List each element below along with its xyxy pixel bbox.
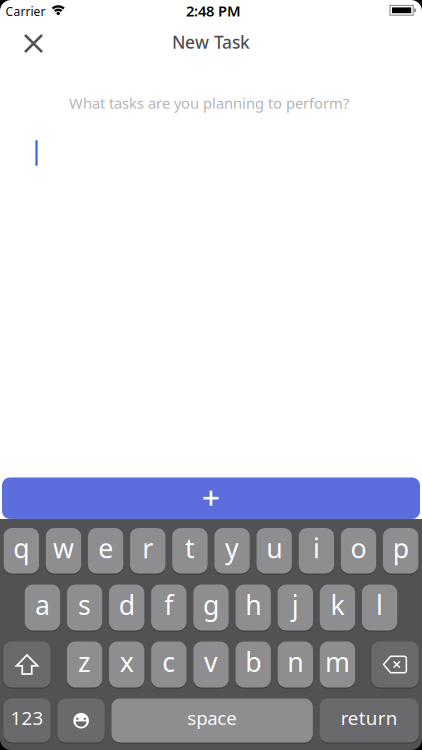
staticText: return xyxy=(341,705,398,730)
button[interactable]: Close xyxy=(19,29,47,57)
staticText: i xyxy=(313,530,320,566)
staticText: x xyxy=(120,644,134,679)
button[interactable]: t xyxy=(172,528,208,573)
button[interactable]: m xyxy=(320,641,355,687)
staticText: o xyxy=(350,530,366,566)
staticText: 2:48 PM xyxy=(186,1,241,21)
button[interactable]: 123 xyxy=(3,698,51,742)
staticText: r xyxy=(142,530,153,566)
staticText: b xyxy=(245,644,261,679)
button[interactable]: n xyxy=(278,641,313,687)
staticText: t xyxy=(185,530,195,566)
staticText: y xyxy=(225,530,239,566)
button[interactable]: j xyxy=(278,584,313,630)
staticText: u xyxy=(266,530,282,566)
staticText: z xyxy=(78,644,91,679)
staticText: New Task xyxy=(172,30,250,53)
staticText: space xyxy=(187,705,237,730)
staticText: v xyxy=(204,644,218,679)
staticText: h xyxy=(245,587,261,622)
button[interactable]: Emoji xyxy=(57,698,105,742)
button[interactable]: x xyxy=(109,641,144,687)
staticText: w xyxy=(53,530,74,566)
staticText: q xyxy=(13,530,29,566)
button[interactable]: Shift xyxy=(3,641,51,687)
staticText: g xyxy=(203,587,219,622)
button[interactable]: h xyxy=(235,584,271,630)
staticText: j xyxy=(292,587,299,622)
button[interactable]: Delete xyxy=(371,641,419,687)
button[interactable]: i xyxy=(299,528,334,573)
button[interactable]: w xyxy=(46,528,81,573)
button[interactable]: return xyxy=(320,698,419,742)
button[interactable]: o xyxy=(341,528,376,573)
staticText: What tasks are you planning to perform? xyxy=(69,93,349,113)
button[interactable]: v xyxy=(193,641,229,687)
button[interactable]: r xyxy=(130,528,165,573)
staticText: l xyxy=(376,587,383,622)
staticText: s xyxy=(78,587,91,622)
button[interactable]: q xyxy=(4,528,39,573)
button[interactable]: c xyxy=(151,641,186,687)
button[interactable]: p xyxy=(383,528,418,573)
button[interactable]: f xyxy=(151,584,187,630)
button[interactable]: d xyxy=(109,584,144,630)
button[interactable]: b xyxy=(235,641,271,687)
button[interactable]: z xyxy=(67,641,102,687)
button[interactable]: space xyxy=(111,698,313,742)
button[interactable]: y xyxy=(214,528,250,573)
button[interactable]: k xyxy=(320,584,355,630)
button[interactable]: e xyxy=(88,528,123,573)
button[interactable]: Add task xyxy=(2,477,420,519)
staticText: n xyxy=(287,644,303,679)
staticText: Carrier xyxy=(5,3,45,19)
staticText: d xyxy=(119,587,135,622)
staticText: 123 xyxy=(10,705,43,730)
button[interactable]: a xyxy=(25,584,60,630)
staticText: c xyxy=(162,644,175,679)
staticText: k xyxy=(330,587,344,622)
staticText: f xyxy=(164,587,173,622)
button[interactable]: u xyxy=(256,528,292,573)
staticText: m xyxy=(325,644,350,679)
staticText: e xyxy=(98,530,113,566)
button[interactable]: s xyxy=(67,584,102,630)
staticText: p xyxy=(393,530,409,566)
button[interactable]: l xyxy=(362,584,397,630)
staticText: a xyxy=(35,587,50,622)
button[interactable]: g xyxy=(193,584,229,630)
